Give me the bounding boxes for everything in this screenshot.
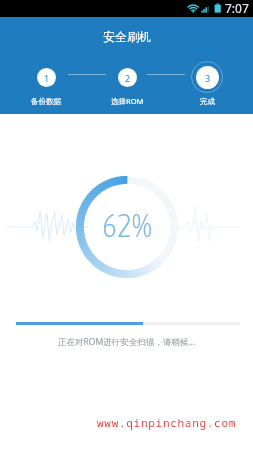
staticText: 1 (44, 72, 50, 84)
staticText: 正在对ROM进行安全扫描，请稍候... (58, 336, 195, 348)
staticText: 2 (125, 72, 131, 84)
staticText: 备份数据 (31, 97, 61, 106)
button[interactable]: 3 (177, 60, 237, 107)
staticText: www.qinpinchang.com (97, 415, 237, 430)
button[interactable]: 2 (97, 60, 157, 107)
staticText: 选择ROM (111, 96, 144, 106)
staticText: 62% (102, 207, 152, 244)
staticText: 完成 (200, 97, 215, 106)
staticText: 安全刷机 (103, 29, 151, 44)
button[interactable]: 1 (16, 60, 76, 107)
staticText: 7:07 (225, 0, 249, 16)
staticText: 3 (205, 72, 211, 84)
